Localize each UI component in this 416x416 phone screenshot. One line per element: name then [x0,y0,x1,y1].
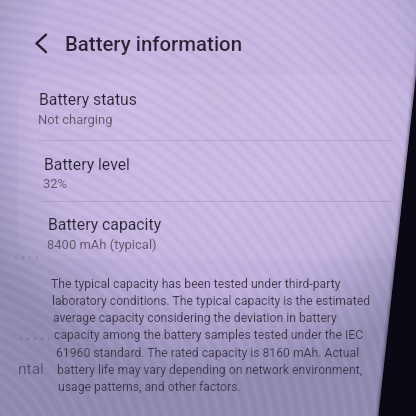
staticText: Battery status [39,90,137,109]
button[interactable] [19,141,409,202]
button[interactable] [20,203,410,259]
staticText: average capacity considering the deviati… [53,311,337,325]
staticText: • • • • • [19,332,52,346]
button[interactable]: Navigate up [28,28,58,58]
staticText: ntal [18,360,44,378]
staticText: Battery level [44,155,130,174]
staticText: Battery capacity [48,215,162,234]
staticText: 8400 mAh (typical) [47,237,157,252]
staticText: 32% [43,176,68,191]
staticText: usage patterns, and other factors. [58,380,241,394]
staticText: The typical capacity has been tested und… [51,277,341,291]
staticText: battery life may vary depending on netwo… [57,363,363,377]
staticText: Not charging [38,112,113,127]
button[interactable] [18,75,408,140]
staticText: laboratory conditions. The typical capac… [52,294,371,308]
staticText: capacity among the battery samples teste… [54,328,364,342]
staticText: 61960 standard. The rated capacity is 81… [56,346,360,360]
staticText: Battery information [65,32,242,56]
staticText: • • • • [14,251,40,265]
